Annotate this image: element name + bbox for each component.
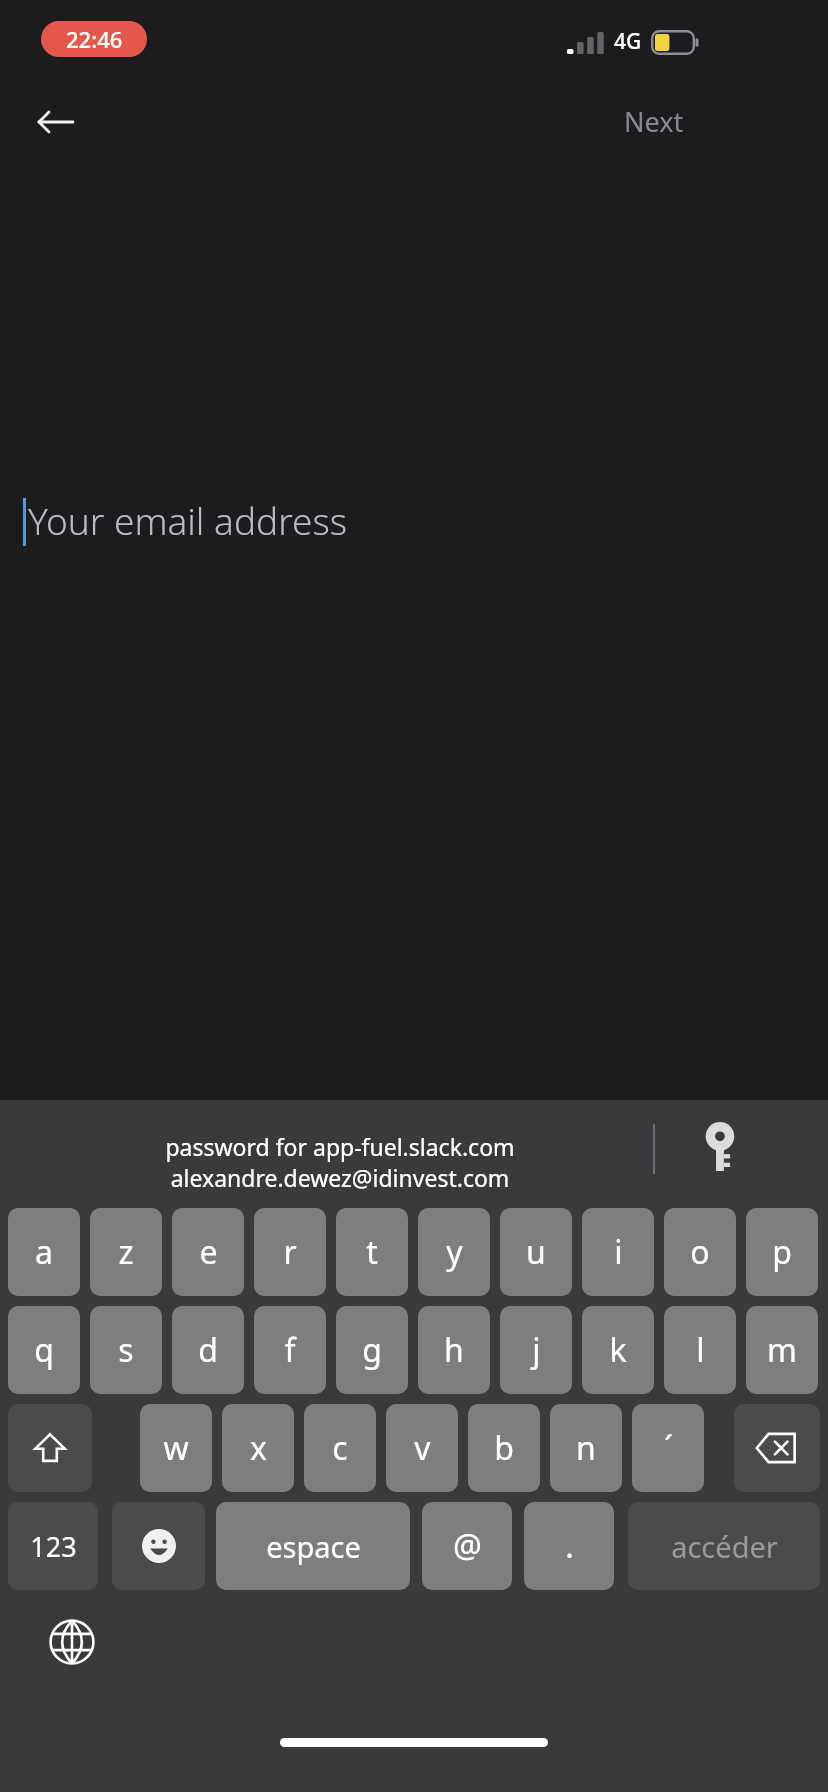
staticText: n	[576, 1426, 596, 1470]
button[interactable]: r	[254, 1208, 326, 1296]
button[interactable]: .	[524, 1502, 614, 1590]
button[interactable]: espace	[216, 1502, 410, 1590]
button[interactable]: @	[422, 1502, 512, 1590]
staticText: g	[362, 1328, 382, 1372]
button[interactable]: e	[172, 1208, 244, 1296]
button[interactable]: l	[664, 1306, 736, 1394]
staticText: m	[767, 1328, 797, 1372]
staticText: o	[690, 1230, 710, 1274]
staticText: 123	[30, 1528, 77, 1565]
button[interactable]: ´	[632, 1404, 704, 1492]
staticText: @	[453, 1524, 482, 1568]
staticText: password for app-fuel.slack.com	[60, 1131, 620, 1162]
staticText: s	[118, 1328, 134, 1372]
button[interactable]: i	[582, 1208, 654, 1296]
staticText: j	[532, 1328, 541, 1372]
staticText: accéder	[671, 1527, 778, 1566]
button[interactable]: Shift	[8, 1404, 92, 1492]
button[interactable]: Next	[600, 92, 708, 150]
button[interactable]: Change keyboard language	[30, 1600, 114, 1684]
button[interactable]: x	[222, 1404, 294, 1492]
staticText: z	[118, 1230, 134, 1274]
staticText: c	[332, 1426, 348, 1470]
staticText: r	[283, 1230, 297, 1274]
button[interactable]: Passwords	[678, 1104, 766, 1188]
staticText: 22:46	[66, 24, 123, 54]
staticText: b	[494, 1426, 514, 1470]
staticText: .	[565, 1524, 574, 1568]
staticText: y	[446, 1230, 463, 1274]
staticText: t	[366, 1230, 378, 1274]
button[interactable]: y	[418, 1208, 490, 1296]
button[interactable]: k	[582, 1306, 654, 1394]
button[interactable]: Emoji	[112, 1502, 205, 1590]
staticText: a	[35, 1230, 53, 1274]
button[interactable]: b	[468, 1404, 540, 1492]
staticText: 4G	[614, 27, 642, 56]
button[interactable]: password for app-fuel.slack.com	[60, 1100, 620, 1192]
staticText: alexandre.dewez@idinvest.com	[60, 1162, 620, 1193]
button[interactable]: c	[304, 1404, 376, 1492]
staticText: v	[414, 1426, 431, 1470]
button[interactable]: d	[172, 1306, 244, 1394]
staticText: espace	[266, 1527, 361, 1566]
button[interactable]: m	[746, 1306, 818, 1394]
button[interactable]: a	[8, 1208, 80, 1296]
button[interactable]: 123	[8, 1502, 98, 1590]
staticText: i	[614, 1230, 623, 1274]
staticText: k	[609, 1328, 627, 1372]
button[interactable]: p	[746, 1208, 818, 1296]
button[interactable]: n	[550, 1404, 622, 1492]
staticText: x	[250, 1426, 267, 1470]
button[interactable]: Back	[22, 88, 90, 156]
staticText: ´	[664, 1426, 673, 1470]
button[interactable]: s	[90, 1306, 162, 1394]
staticText: Next	[624, 103, 684, 140]
button[interactable]: t	[336, 1208, 408, 1296]
button[interactable]: q	[8, 1306, 80, 1394]
button[interactable]: o	[664, 1208, 736, 1296]
button[interactable]: g	[336, 1306, 408, 1394]
button[interactable]: v	[386, 1404, 458, 1492]
staticText: d	[198, 1328, 218, 1372]
button[interactable]: Backspace	[734, 1404, 820, 1492]
button[interactable]: Your email address	[0, 470, 828, 580]
staticText: u	[526, 1230, 546, 1274]
button[interactable]: h	[418, 1306, 490, 1394]
staticText: l	[696, 1328, 705, 1372]
staticText: p	[772, 1230, 792, 1274]
button[interactable]: w	[140, 1404, 212, 1492]
staticText: Your email address	[28, 495, 348, 545]
staticText: h	[444, 1328, 464, 1372]
button[interactable]: z	[90, 1208, 162, 1296]
staticText: e	[199, 1230, 218, 1274]
staticText: w	[163, 1426, 189, 1470]
staticText: f	[284, 1328, 296, 1372]
staticText: q	[34, 1328, 54, 1372]
button[interactable]: f	[254, 1306, 326, 1394]
button[interactable]: u	[500, 1208, 572, 1296]
button[interactable]: j	[500, 1306, 572, 1394]
button[interactable]: accéder	[628, 1502, 820, 1590]
